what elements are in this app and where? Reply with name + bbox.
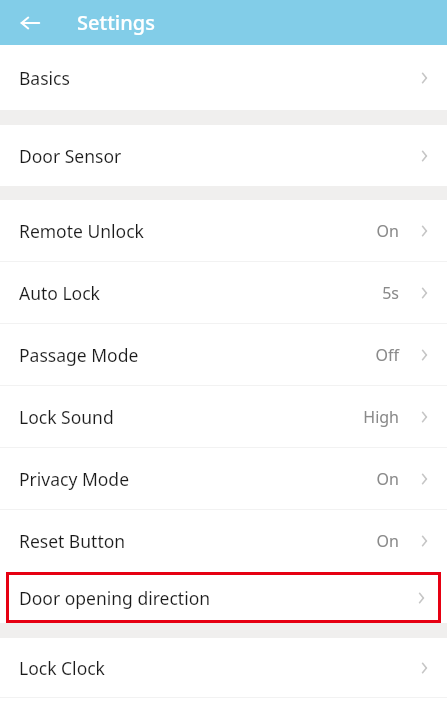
button[interactable]: Back — [12, 5, 48, 41]
staticText: Lock Clock — [19, 656, 105, 680]
staticText: Remote Unlock — [19, 219, 144, 243]
button[interactable]: Passage Mode — [0, 324, 447, 386]
button[interactable]: Remote Unlock — [0, 200, 447, 262]
staticText: Door Sensor — [19, 144, 122, 168]
staticText: Off — [375, 344, 399, 366]
staticText: On — [376, 468, 399, 490]
button[interactable]: Basics — [0, 45, 447, 110]
staticText: Door opening direction — [19, 586, 211, 610]
staticText: Auto Lock — [19, 281, 100, 305]
button[interactable]: Door opening direction — [6, 572, 441, 623]
staticText: Privacy Mode — [19, 467, 130, 491]
staticText: Basics — [19, 66, 70, 90]
staticText: High — [363, 406, 399, 428]
staticText: Settings — [77, 9, 155, 36]
button[interactable]: Lock Sound — [0, 386, 447, 448]
button[interactable]: Reset Button — [0, 510, 447, 572]
staticText: On — [376, 530, 399, 552]
staticText: Lock Sound — [19, 405, 114, 429]
staticText: On — [376, 220, 399, 242]
button[interactable]: Privacy Mode — [0, 448, 447, 510]
button[interactable]: Door Sensor — [0, 125, 447, 186]
staticText: Reset Button — [19, 529, 126, 553]
button[interactable]: Auto Lock — [0, 262, 447, 324]
staticText: 5s — [382, 282, 399, 304]
button[interactable]: Lock Clock — [0, 638, 447, 698]
staticText: Passage Mode — [19, 343, 139, 367]
